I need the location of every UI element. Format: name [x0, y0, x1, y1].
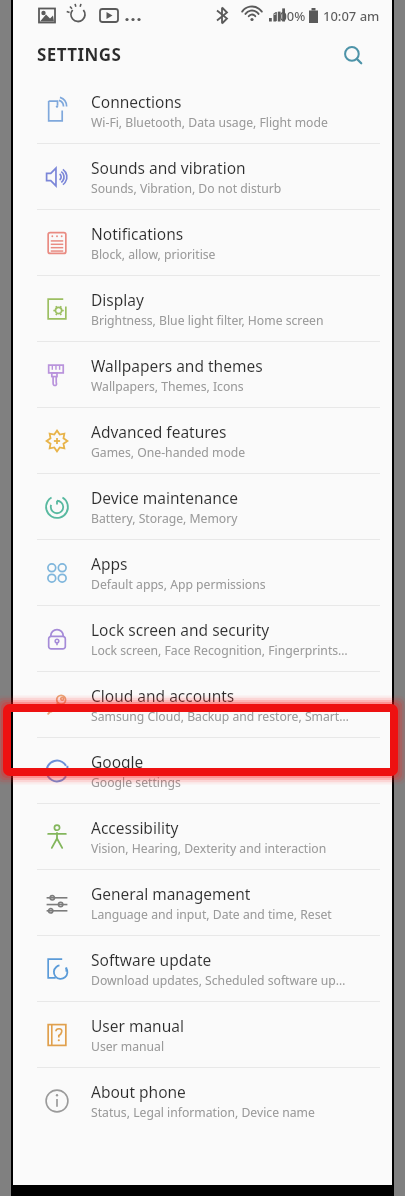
staticText: Block, allow, prioritise: [91, 246, 216, 263]
staticText: Default apps, App permissions: [91, 576, 266, 593]
staticText: Google settings: [91, 774, 181, 791]
button[interactable]: Advanced features: [13, 407, 392, 473]
staticText: SETTINGS: [37, 43, 122, 66]
staticText: 10:07 am: [323, 7, 380, 25]
staticText: Lock screen, Face Recognition, Fingerpri…: [91, 642, 348, 659]
staticText: Notifications: [91, 223, 184, 244]
staticText: Cloud and accounts: [91, 685, 235, 706]
button[interactable]: About phone: [13, 1067, 392, 1133]
button[interactable]: Lock screen and security: [13, 605, 392, 671]
staticText: Advanced features: [91, 421, 227, 442]
staticText: Vision, Hearing, Dexterity and interacti…: [91, 840, 327, 857]
staticText: Apps: [91, 553, 128, 574]
staticText: Display: [91, 289, 144, 310]
staticText: Battery, Storage, Memory: [91, 510, 238, 527]
staticText: Connections: [91, 91, 182, 112]
staticText: Games, One-handed mode: [91, 444, 246, 461]
staticText: Sounds and vibration: [91, 157, 246, 178]
button[interactable]: Software update: [13, 935, 392, 1001]
staticText: Google: [91, 751, 144, 772]
staticText: Device maintenance: [91, 487, 238, 508]
staticText: Sounds, Vibration, Do not disturb: [91, 180, 282, 197]
button[interactable]: Cloud and accounts: [13, 671, 392, 737]
staticText: About phone: [91, 1081, 186, 1102]
staticText: 100%: [272, 7, 306, 25]
button[interactable]: Connections: [13, 78, 392, 143]
button[interactable]: Accessibility: [13, 803, 392, 869]
staticText: Wi-Fi, Bluetooth, Data usage, Flight mod…: [91, 114, 328, 131]
staticText: General management: [91, 883, 251, 904]
button[interactable]: User manual: [13, 1001, 392, 1067]
button[interactable]: General management: [13, 869, 392, 935]
staticText: Samsung Cloud, Backup and restore, Smart…: [91, 708, 349, 725]
button[interactable]: Apps: [13, 539, 392, 605]
button[interactable]: Wallpapers and themes: [13, 341, 392, 407]
button[interactable]: Sounds and vibration: [13, 143, 392, 209]
staticText: Accessibility: [91, 817, 179, 838]
staticText: Lock screen and security: [91, 619, 270, 640]
button[interactable]: Search: [336, 38, 370, 72]
button[interactable]: Notifications: [13, 209, 392, 275]
staticText: Wallpapers, Themes, Icons: [91, 378, 244, 395]
staticText: Language and input, Date and time, Reset: [91, 906, 332, 923]
button[interactable]: Display: [13, 275, 392, 341]
staticText: User manual: [91, 1015, 184, 1036]
button[interactable]: Google: [13, 737, 392, 803]
staticText: User manual: [91, 1038, 165, 1055]
button[interactable]: Device maintenance: [13, 473, 392, 539]
staticText: Wallpapers and themes: [91, 355, 263, 376]
staticText: Software update: [91, 949, 212, 970]
staticText: Status, Legal information, Device name: [91, 1104, 315, 1121]
staticText: Brightness, Blue light filter, Home scre…: [91, 312, 324, 329]
staticText: Download updates, Scheduled software up…: [91, 972, 346, 989]
